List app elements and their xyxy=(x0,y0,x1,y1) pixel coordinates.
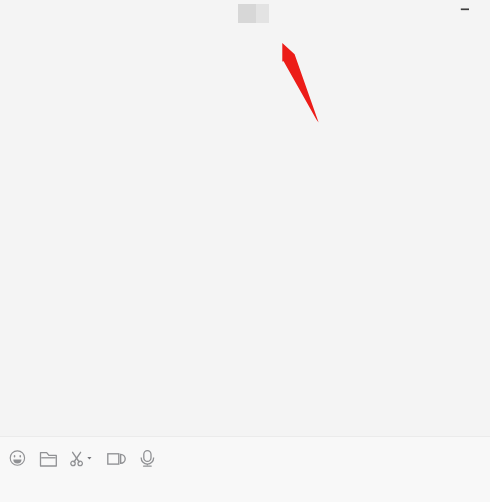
button[interactable]: Minimize xyxy=(448,0,482,19)
button[interactable]: Screenshot xyxy=(66,445,92,471)
button[interactable]: Voice message xyxy=(136,445,162,471)
button[interactable]: Video call xyxy=(103,445,129,471)
button[interactable]: Emoji xyxy=(6,445,32,471)
button[interactable]: Selected item xyxy=(238,4,269,23)
button[interactable]: Files xyxy=(36,445,62,471)
